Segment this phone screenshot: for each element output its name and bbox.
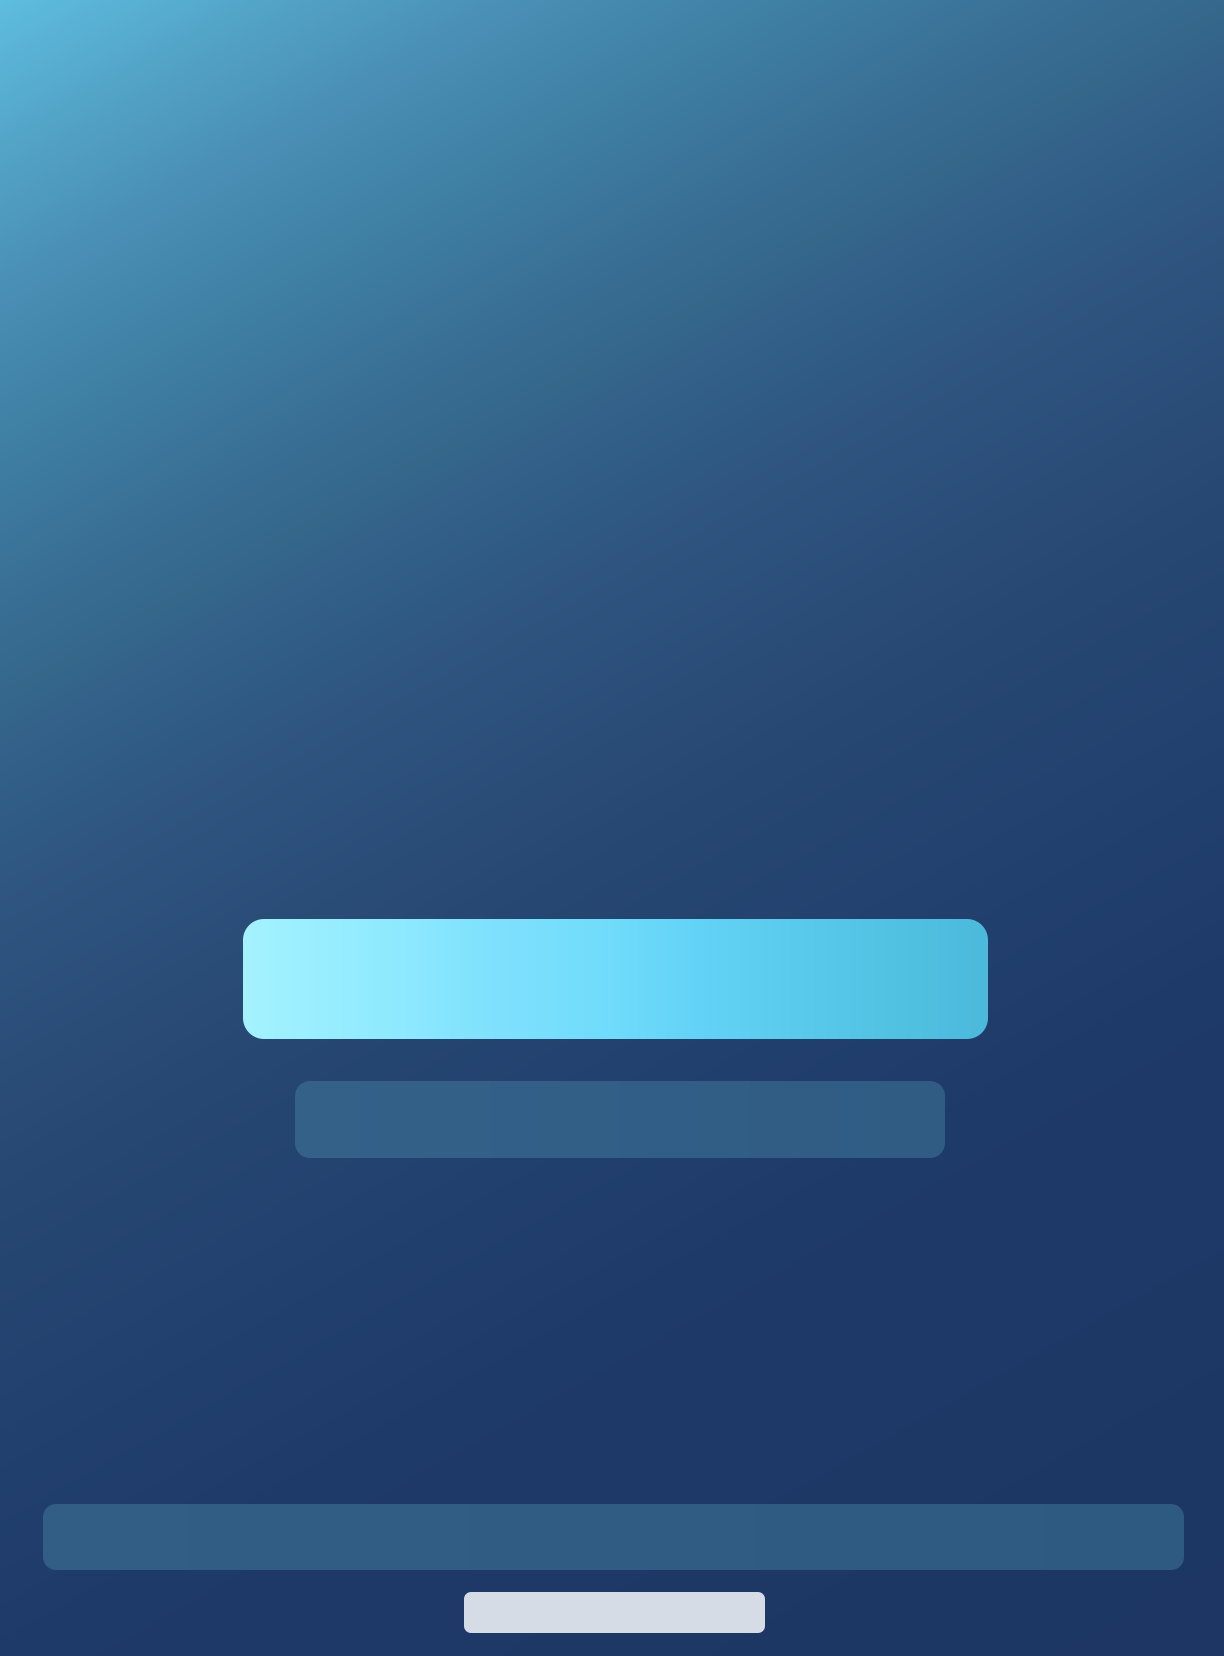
button[interactable]: Primary action bbox=[243, 919, 988, 1039]
